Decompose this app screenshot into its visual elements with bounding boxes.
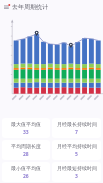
button[interactable]: 月经最短持续时间: [52, 162, 101, 182]
staticText: 最小值平均值: [11, 165, 41, 171]
staticText: 7: [75, 129, 78, 136]
staticText: 26: [23, 173, 29, 180]
staticText: 月经最短持续时间: [57, 165, 97, 171]
staticText: 去年周期统计: [12, 3, 48, 11]
button[interactable]: 平均周期长度: [2, 140, 50, 160]
staticText: 5: [75, 151, 78, 158]
staticText: 3: [75, 173, 78, 180]
staticText: 33: [23, 129, 29, 136]
button[interactable]: 月经平均持续时间: [52, 140, 101, 160]
staticText: 28: [23, 151, 29, 158]
button[interactable]: 月经最长持续时间: [52, 118, 101, 138]
staticText: 月经最长持续时间: [57, 121, 97, 127]
staticText: 最大值平均值: [11, 121, 41, 127]
button[interactable]: 最大值平均值: [2, 118, 50, 138]
staticText: 月经平均持续时间: [57, 143, 97, 149]
staticText: 平均周期长度: [11, 143, 41, 149]
button[interactable]: 最小值平均值: [2, 162, 50, 182]
button[interactable]: Menu: [2, 2, 11, 11]
